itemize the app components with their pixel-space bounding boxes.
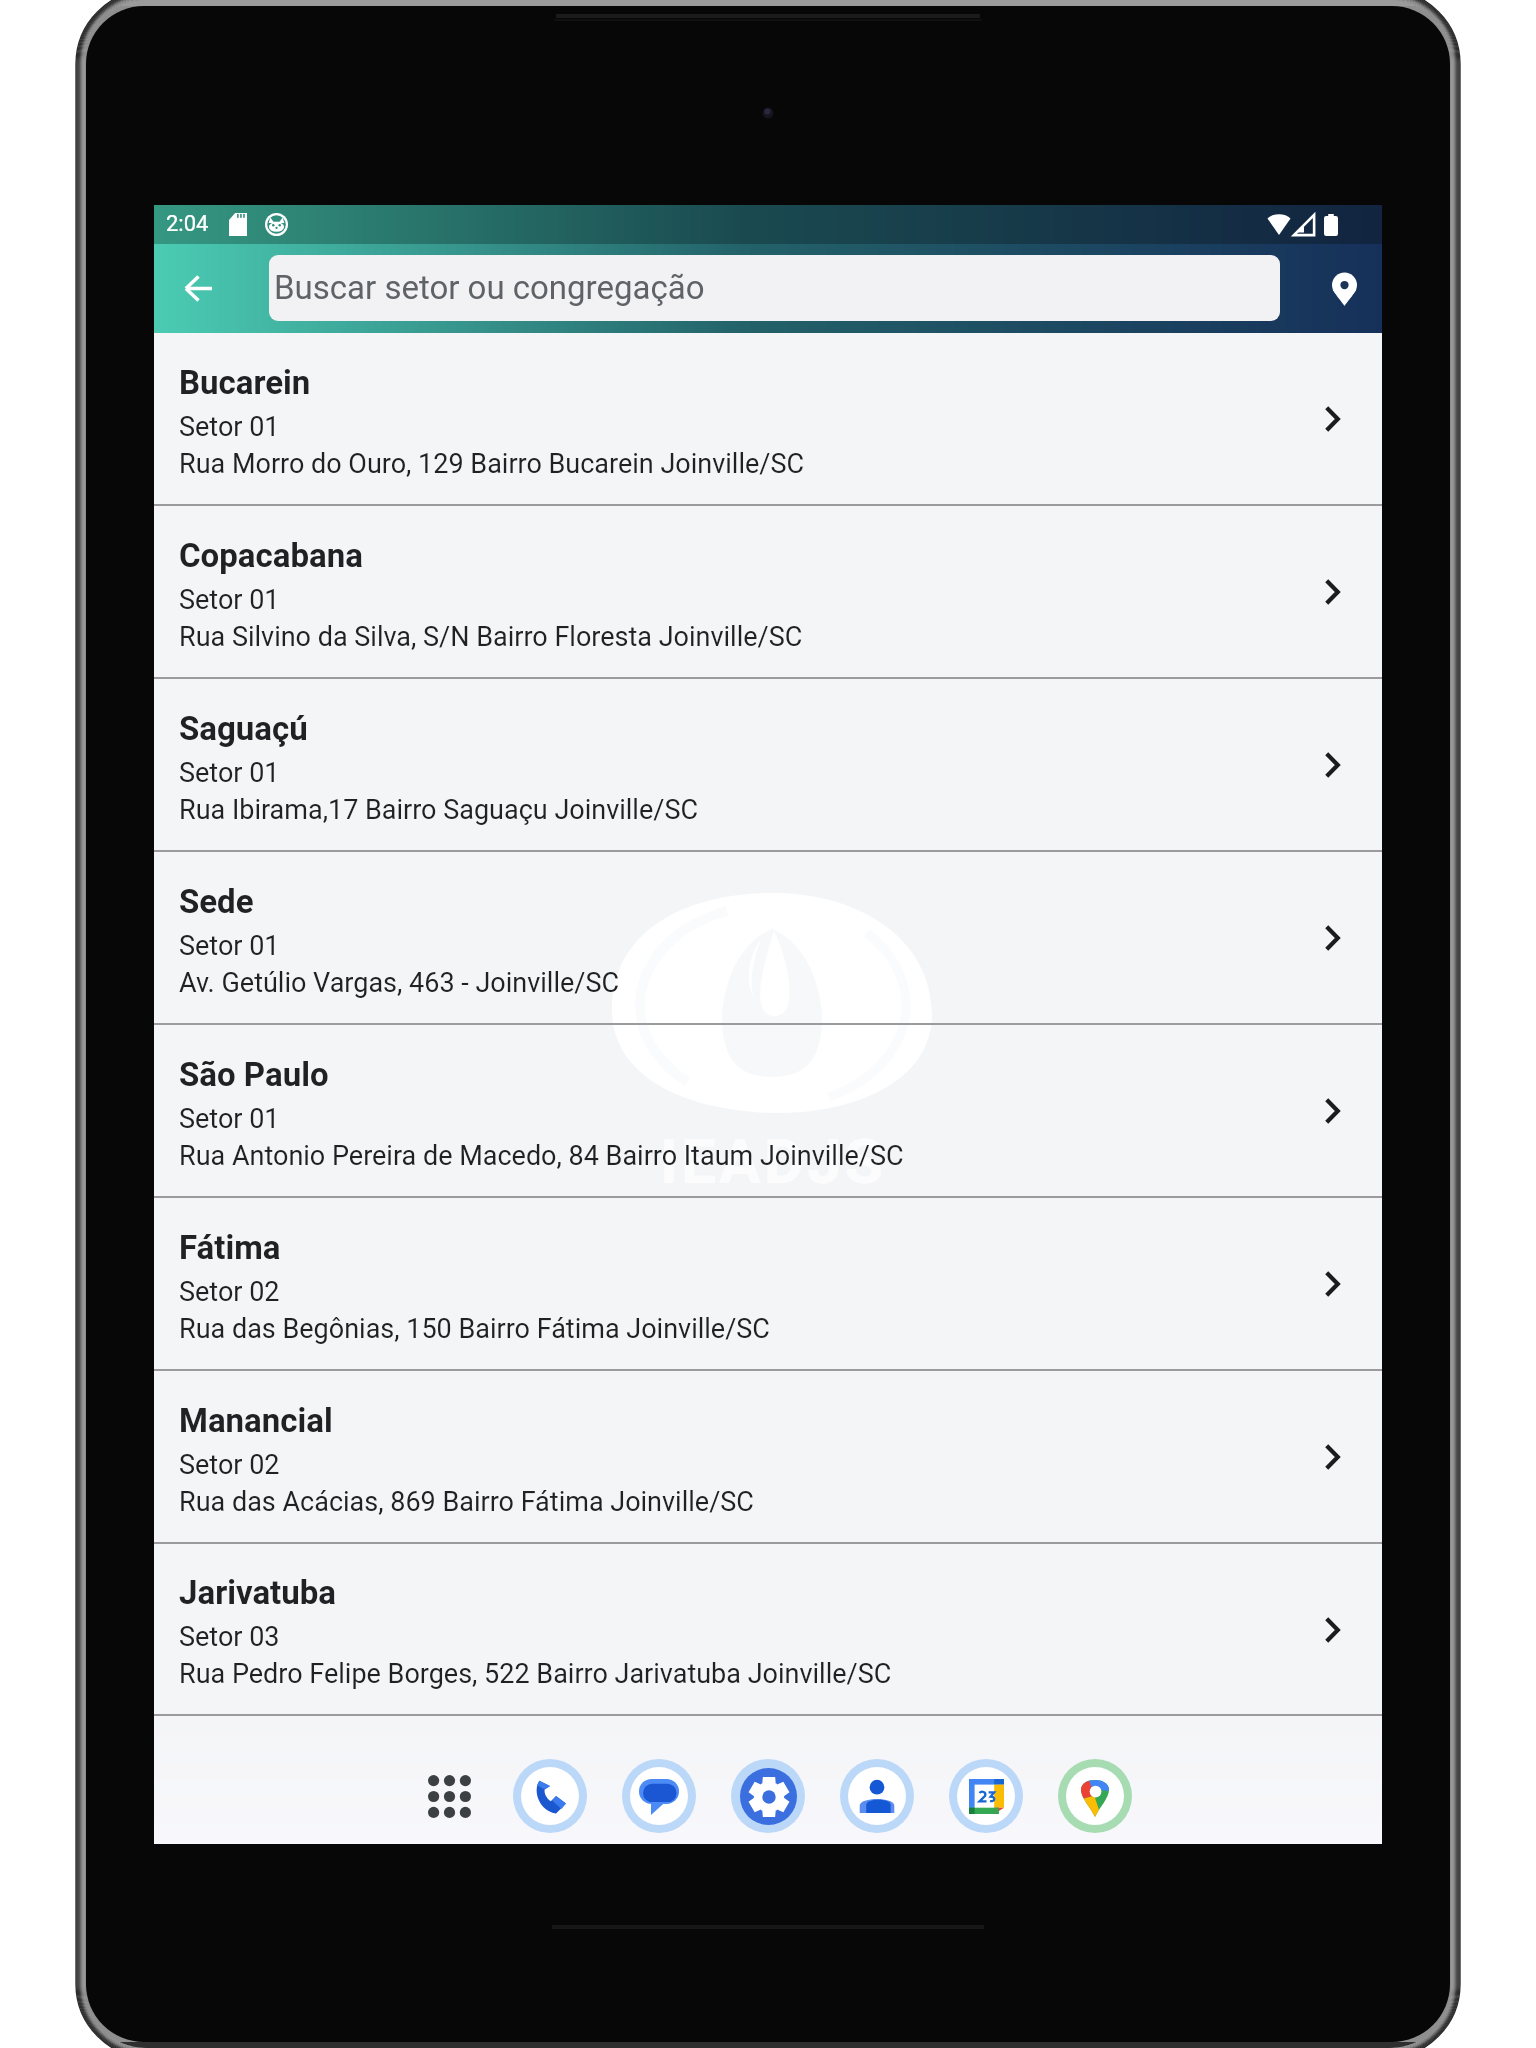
button[interactable]: Sede — [154, 852, 1382, 1025]
button[interactable]: Fátima — [154, 1198, 1382, 1371]
button[interactable]: Settings — [731, 1759, 805, 1833]
staticText: Sede — [179, 882, 254, 921]
button[interactable]: Bucarein — [154, 333, 1382, 506]
staticText: IEADJS — [660, 1125, 886, 1198]
button[interactable]: Contacts — [840, 1759, 914, 1833]
staticText: Rua das Begônias, 150 Bairro Fátima Join… — [179, 1313, 770, 1345]
staticText: Setor 02 — [179, 1449, 280, 1481]
staticText: Setor 01 — [179, 1103, 280, 1135]
staticText: Setor 01 — [179, 757, 280, 789]
button[interactable]: Manancial — [154, 1371, 1382, 1544]
staticText: Av. Getúlio Vargas, 463 - Joinville/SC — [179, 967, 620, 999]
staticText: Setor 01 — [179, 930, 280, 962]
button[interactable]: All apps — [412, 1759, 486, 1833]
button[interactable]: Saguaçú — [154, 679, 1382, 852]
staticText: Setor 01 — [179, 584, 280, 616]
button[interactable]: São Paulo — [154, 1025, 1382, 1198]
staticText: Copacabana — [179, 536, 363, 575]
staticText: Rua Antonio Pereira de Macedo, 84 Bairro… — [179, 1140, 904, 1172]
button[interactable]: Back — [154, 244, 242, 333]
staticText: Setor 02 — [179, 1276, 280, 1308]
staticText: Fátima — [179, 1228, 281, 1267]
button[interactable]: Maps — [1058, 1759, 1132, 1833]
staticText: Jarivatuba — [179, 1573, 336, 1612]
staticText: Rua Morro do Ouro, 129 Bairro Bucarein J… — [179, 448, 805, 480]
button[interactable]: Buscar setor ou congregação — [269, 255, 1280, 321]
button[interactable]: Messages — [622, 1759, 696, 1833]
staticText: Rua das Acácias, 869 Bairro Fátima Joinv… — [179, 1486, 754, 1518]
staticText: 2:04 — [166, 211, 209, 237]
staticText: Rua Ibirama,17 Bairro Saguaçu Joinville/… — [179, 794, 698, 826]
button[interactable]: Calendar — [949, 1759, 1023, 1833]
staticText: Buscar setor ou congregação — [274, 268, 705, 307]
staticText: Saguaçú — [179, 709, 308, 748]
button[interactable]: Jarivatuba — [154, 1544, 1382, 1716]
staticText: Setor 03 — [179, 1621, 280, 1653]
staticText: São Paulo — [179, 1055, 329, 1094]
button[interactable]: Map location — [1292, 244, 1396, 333]
staticText: Rua Pedro Felipe Borges, 522 Bairro Jari… — [179, 1658, 892, 1690]
staticText: Manancial — [179, 1401, 333, 1440]
staticText: Setor 01 — [179, 411, 280, 443]
staticText: Bucarein — [179, 363, 311, 402]
staticText: Rua Silvino da Silva, S/N Bairro Florest… — [179, 621, 803, 653]
button[interactable]: Phone — [513, 1759, 587, 1833]
button[interactable]: Copacabana — [154, 506, 1382, 679]
